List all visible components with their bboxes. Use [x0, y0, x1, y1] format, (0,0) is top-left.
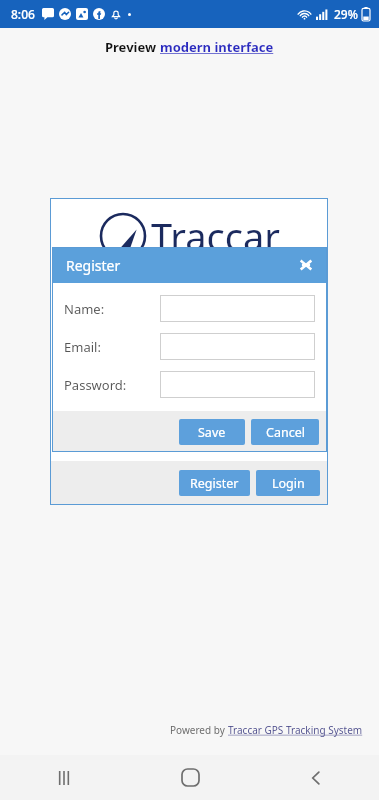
- button[interactable]: Recent apps: [0, 755, 127, 800]
- button[interactable]: [160, 333, 315, 360]
- staticText: modern interface: [160, 38, 274, 56]
- staticText: Login: [272, 475, 305, 492]
- button[interactable]: Save: [179, 419, 245, 445]
- staticText: Powered by: [170, 723, 228, 737]
- staticText: Password:: [64, 376, 127, 394]
- button[interactable]: modern interface: [160, 38, 274, 56]
- button[interactable]: Close: [297, 256, 315, 274]
- staticText: Traccar: [151, 210, 280, 262]
- staticText: Register: [190, 475, 239, 492]
- button[interactable]: Register: [179, 470, 250, 496]
- button[interactable]: Traccar GPS Tracking System: [228, 723, 363, 737]
- staticText: Email:: [64, 338, 101, 356]
- staticText: Cancel: [266, 424, 305, 441]
- button[interactable]: Login: [256, 470, 320, 496]
- staticText: Save: [198, 424, 226, 441]
- staticText: Preview: [105, 38, 160, 56]
- staticText: 8:06: [11, 6, 35, 22]
- staticText: Traccar GPS Tracking System: [228, 723, 363, 737]
- staticText: Name:: [64, 300, 105, 318]
- button[interactable]: [160, 295, 315, 322]
- button[interactable]: Back: [253, 755, 379, 800]
- button[interactable]: [160, 371, 315, 398]
- staticText: Register: [66, 256, 121, 275]
- button[interactable]: Cancel: [251, 419, 319, 445]
- button[interactable]: Home: [127, 755, 253, 800]
- staticText: 29%: [334, 6, 358, 22]
